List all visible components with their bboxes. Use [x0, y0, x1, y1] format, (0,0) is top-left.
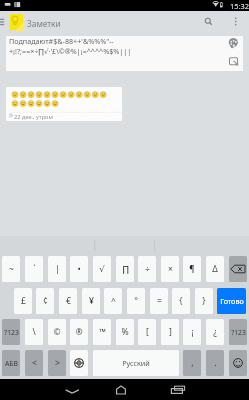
staticText: +¡!?;==×÷∏√·'£\©®%|¡=^^^^%$%|||: [9, 46, 132, 56]
button[interactable]: Search: [200, 12, 217, 32]
staticText: ™: [99, 326, 106, 338]
staticText: {: [179, 295, 183, 307]
staticText: Подпадают#$&-88++'&%%%"--: [9, 36, 114, 46]
button[interactable]: Back: [58, 379, 88, 400]
staticText: Δ: [212, 263, 218, 275]
staticText: %: [121, 326, 129, 338]
staticText: ®: [75, 326, 83, 338]
button[interactable]: ∏: [116, 256, 134, 282]
button[interactable]: ¶: [183, 256, 201, 282]
button[interactable]: •: [70, 256, 88, 282]
button[interactable]: =: [150, 288, 168, 314]
button[interactable]: Change colour: [228, 38, 241, 51]
button[interactable]: ~: [2, 256, 20, 282]
button[interactable]: Navigation menu: [0, 11, 9, 36]
button[interactable]: More options: [229, 13, 242, 31]
staticText: [: [146, 326, 149, 338]
button[interactable]: <: [25, 350, 43, 376]
button[interactable]: ×: [161, 256, 179, 282]
button[interactable]: °: [127, 288, 145, 314]
staticText: ?123: [4, 328, 19, 337]
button[interactable]: ¢: [36, 288, 54, 314]
staticText: ∏: [122, 264, 129, 274]
button[interactable]: [6, 36, 243, 71]
staticText: Готово: [220, 296, 244, 306]
staticText: <: [32, 357, 37, 369]
button[interactable]: Add image: [228, 56, 241, 69]
staticText: }: [202, 295, 206, 307]
button[interactable]: ©: [48, 319, 66, 345]
button[interactable]: `: [25, 256, 43, 282]
button[interactable]: ]: [161, 319, 179, 345]
staticText: √: [99, 264, 105, 274]
button[interactable]: |: [48, 256, 66, 282]
button[interactable]: {: [172, 288, 190, 314]
staticText: €: [66, 295, 71, 307]
staticText: ¡: [191, 326, 194, 338]
staticText: ^: [111, 295, 116, 307]
button[interactable]: >: [48, 350, 66, 376]
button[interactable]: ÷: [138, 256, 156, 282]
button[interactable]: Русский: [93, 350, 179, 376]
staticText: АБВ: [5, 359, 18, 368]
button[interactable]: ™: [93, 319, 111, 345]
staticText: ÷: [145, 263, 150, 275]
staticText: ,: [191, 357, 194, 369]
staticText: •: [77, 263, 81, 275]
staticText: ©: [53, 326, 61, 338]
button[interactable]: Готово: [217, 288, 246, 314]
button[interactable]: ¡: [183, 319, 201, 345]
staticText: ~: [9, 263, 14, 275]
button[interactable]: Keep note: [10, 14, 23, 30]
staticText: 22 дек., утром: [14, 113, 53, 121]
button[interactable]: 22 дек., утром: [6, 87, 122, 121]
staticText: ×: [168, 263, 173, 275]
button[interactable]: Δ: [206, 256, 224, 282]
staticText: ¢: [43, 295, 48, 307]
button[interactable]: %: [116, 319, 134, 345]
staticText: ¥: [89, 295, 94, 307]
button[interactable]: АБВ: [2, 350, 20, 376]
button[interactable]: ?123: [2, 319, 20, 345]
button[interactable]: [: [138, 319, 156, 345]
button[interactable]: Home: [109, 379, 140, 400]
button[interactable]: ,: [183, 350, 201, 376]
staticText: Русский: [122, 358, 150, 368]
staticText: >: [55, 357, 60, 369]
staticText: `: [33, 263, 36, 275]
staticText: ?123: [231, 328, 246, 337]
button[interactable]: .: [206, 350, 224, 376]
button[interactable]: }: [195, 288, 213, 314]
staticText: =: [157, 295, 162, 307]
staticText: 15:32: [230, 1, 249, 11]
staticText: ¶: [189, 263, 195, 275]
button[interactable]: €: [59, 288, 77, 314]
button[interactable]: ^: [104, 288, 122, 314]
button[interactable]: Change language: [70, 350, 88, 376]
staticText: °: [134, 295, 138, 307]
button[interactable]: £: [14, 288, 32, 314]
staticText: .: [214, 357, 217, 369]
button[interactable]: √: [93, 256, 111, 282]
staticText: Заметки: [27, 18, 61, 29]
staticText: £: [21, 295, 26, 307]
button[interactable]: Recent apps: [163, 379, 191, 400]
button[interactable]: ¥: [82, 288, 100, 314]
button[interactable]: Emoji: [229, 350, 247, 376]
button[interactable]: ?123: [229, 319, 247, 345]
staticText: ¿: [213, 326, 217, 338]
button[interactable]: \: [25, 319, 43, 345]
button[interactable]: Backspace: [229, 256, 247, 282]
staticText: ]: [169, 326, 172, 338]
staticText: |: [55, 263, 60, 275]
button[interactable]: ®: [70, 319, 88, 345]
staticText: \: [32, 326, 36, 338]
button[interactable]: ¿: [206, 319, 224, 345]
